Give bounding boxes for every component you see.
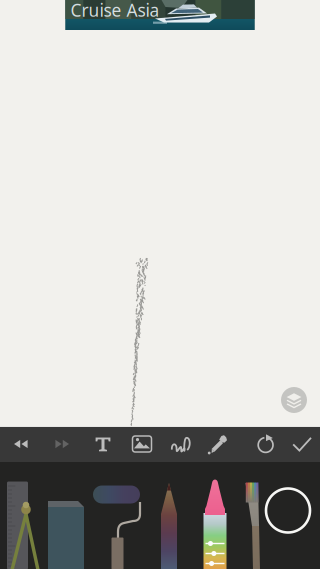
button[interactable]: Redo xyxy=(43,426,81,462)
button[interactable]: Paintbrush xyxy=(241,462,271,569)
button[interactable]: Reset xyxy=(247,426,285,462)
button[interactable]: Marker settings xyxy=(199,462,231,569)
button[interactable]: Pencil xyxy=(155,462,183,569)
button[interactable]: Layers xyxy=(281,387,307,413)
button[interactable]: Done xyxy=(283,426,320,462)
button[interactable]: Cruise Asia xyxy=(65,0,254,30)
button[interactable]: Colour xyxy=(261,462,315,569)
button[interactable]: Draw xyxy=(162,426,200,462)
button[interactable]: Insert photo xyxy=(123,426,161,462)
staticText: Cruise Asia xyxy=(70,0,159,21)
button[interactable]: Undo xyxy=(2,426,40,462)
button[interactable]: Paint roller xyxy=(91,462,145,569)
button[interactable]: Eraser xyxy=(44,462,88,569)
button[interactable]: Eyedropper xyxy=(199,426,237,462)
button[interactable]: Add text xyxy=(84,426,122,462)
button[interactable]: Ruler and compass xyxy=(2,462,46,569)
